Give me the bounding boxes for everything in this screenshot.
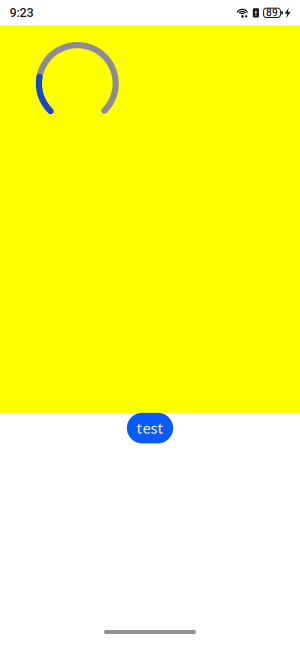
button[interactable]: test (127, 413, 173, 443)
staticText: 9:23 (9, 5, 33, 20)
staticText: test (136, 418, 163, 438)
staticText: 89 (266, 7, 278, 19)
